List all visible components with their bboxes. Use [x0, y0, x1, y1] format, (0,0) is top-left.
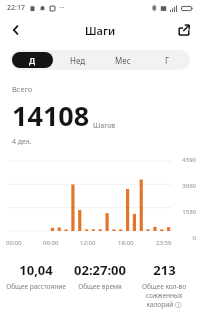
staticText: 213 — [153, 261, 176, 279]
button[interactable]: Г — [147, 52, 188, 68]
button[interactable]: Back — [4, 18, 28, 42]
staticText: 1530 — [176, 208, 196, 216]
button[interactable]: Мес — [102, 52, 143, 68]
staticText: Мес — [115, 55, 131, 66]
staticText: Общее кол-во сожженных калорий ⓘ — [134, 282, 194, 309]
staticText: 0 — [176, 234, 196, 242]
staticText: Шаги — [85, 23, 116, 38]
staticText: 12:00 — [80, 239, 96, 247]
staticText: 10,04 — [19, 261, 53, 279]
staticText: 3060 — [176, 182, 196, 190]
staticText: 4590 — [176, 156, 196, 164]
staticText: Нед — [70, 55, 86, 66]
staticText: Всего — [12, 84, 33, 94]
staticText: 4 дек. — [12, 137, 32, 147]
staticText: 18:00 — [118, 239, 134, 247]
button[interactable]: Share — [173, 19, 195, 41]
staticText: Общее расстояние — [6, 282, 66, 291]
button[interactable]: 02:27:00 — [68, 261, 132, 291]
staticText: 23:59 — [156, 239, 172, 247]
staticText: Шагов — [93, 121, 116, 131]
button[interactable]: Д — [12, 52, 53, 68]
staticText: 22:17 — [7, 3, 25, 13]
staticText: 00:00 — [6, 239, 22, 247]
staticText: Г — [165, 55, 170, 66]
button[interactable]: 213 — [132, 261, 196, 309]
staticText: Общее время — [78, 282, 122, 291]
staticText: 02:27:00 — [74, 261, 126, 279]
staticText: ··· — [59, 3, 65, 13]
staticText: 14108 — [12, 97, 90, 134]
button[interactable]: 10,04 — [4, 261, 68, 291]
staticText: 06:00 — [43, 239, 59, 247]
button[interactable]: Нед — [57, 52, 98, 68]
staticText: Д — [29, 55, 36, 66]
